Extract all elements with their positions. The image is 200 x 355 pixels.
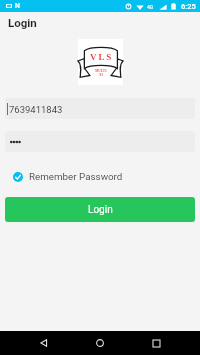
staticText: Remember Password bbox=[29, 171, 123, 182]
staticText: V L S bbox=[90, 52, 112, 62]
staticText: Login bbox=[8, 16, 37, 29]
button[interactable]: Home bbox=[88, 331, 112, 355]
button[interactable]: Remember Password bbox=[13, 171, 123, 182]
button[interactable]: Recent apps bbox=[144, 331, 168, 355]
staticText: XI bbox=[99, 73, 103, 77]
staticText: Login bbox=[88, 204, 113, 216]
staticText: 6:25 bbox=[181, 2, 196, 11]
staticText: 4G bbox=[147, 4, 154, 10]
button[interactable] bbox=[5, 131, 195, 152]
button[interactable]: 7639411843 bbox=[5, 98, 195, 119]
button[interactable]: Login bbox=[5, 197, 195, 222]
staticText: N bbox=[15, 2, 20, 10]
staticText: 7639411843 bbox=[9, 104, 63, 115]
button[interactable]: Back bbox=[32, 331, 56, 355]
staticText: MULTI bbox=[95, 69, 107, 73]
